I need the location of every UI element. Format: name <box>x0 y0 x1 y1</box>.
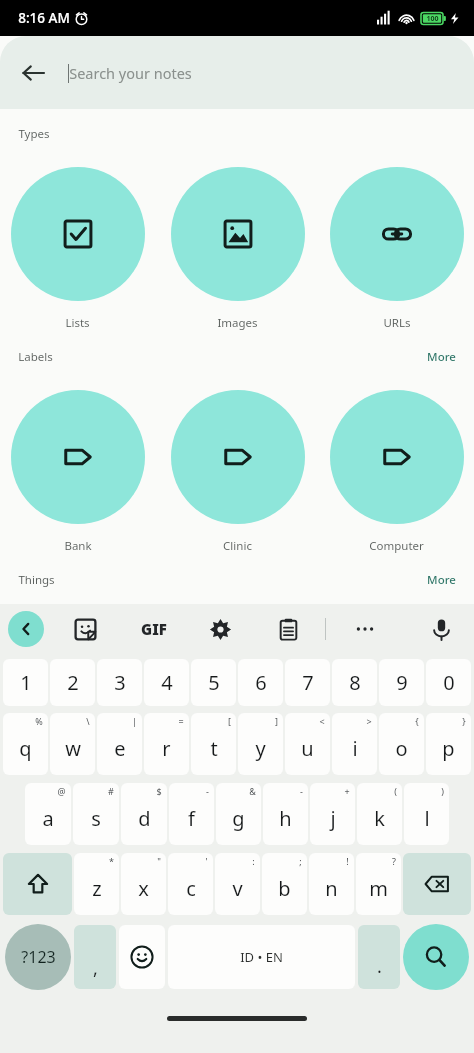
button[interactable]: 4 <box>144 659 189 706</box>
button[interactable]: 6 <box>238 659 283 706</box>
button[interactable]: Back <box>10 50 56 96</box>
button[interactable]: URLs <box>329 167 464 331</box>
button[interactable]: ID • EN <box>168 925 355 989</box>
button[interactable]: . <box>358 925 400 989</box>
staticText: f <box>188 805 195 832</box>
button[interactable]: $ <box>121 783 167 845</box>
button[interactable]: Settings <box>201 610 239 648</box>
button[interactable]: [ <box>191 713 236 775</box>
button[interactable]: > <box>332 713 377 775</box>
button[interactable]: + <box>310 783 355 845</box>
staticText: w <box>65 735 81 762</box>
staticText: - <box>300 785 303 797</box>
staticText: > <box>366 715 372 727</box>
button[interactable]: ] <box>238 713 283 775</box>
staticText: @ <box>57 785 66 797</box>
staticText: 3 <box>114 669 126 696</box>
staticText: u <box>301 735 314 762</box>
button[interactable]: Computer <box>329 390 464 554</box>
staticText: x <box>138 875 149 902</box>
button[interactable]: Stickers <box>66 610 104 648</box>
staticText: More <box>427 349 456 365</box>
button[interactable]: \ <box>50 713 95 775</box>
button[interactable]: ; <box>262 853 307 915</box>
staticText: ' <box>205 855 208 867</box>
button[interactable]: ! <box>309 853 354 915</box>
staticText: c <box>186 875 196 902</box>
button[interactable]: Clinic <box>170 390 305 554</box>
button[interactable]: 2 <box>50 659 95 706</box>
button[interactable]: Lists <box>10 167 145 331</box>
staticText: 100 <box>426 14 439 24</box>
staticText: 4 <box>161 669 173 696</box>
staticText: 9 <box>396 669 408 696</box>
staticText: | <box>132 715 137 727</box>
button[interactable]: GIF <box>134 609 174 649</box>
staticText: o <box>395 735 408 762</box>
button[interactable]: , <box>74 925 116 989</box>
button[interactable]: More <box>423 570 460 590</box>
button[interactable]: Search your notes <box>68 36 474 109</box>
staticText: [ <box>228 715 231 727</box>
button[interactable]: " <box>121 853 166 915</box>
button[interactable]: : <box>215 853 260 915</box>
button[interactable]: ?123 <box>5 924 71 990</box>
staticText: < <box>319 715 325 727</box>
button[interactable]: - <box>169 783 214 845</box>
staticText: GIF <box>141 619 167 639</box>
button[interactable]: Backspace <box>403 853 471 915</box>
staticText: = <box>178 715 184 727</box>
button[interactable]: More options <box>346 610 384 648</box>
button[interactable]: | <box>97 713 142 775</box>
button[interactable]: ? <box>356 853 401 915</box>
staticText: Bank <box>64 538 92 554</box>
button[interactable]: 9 <box>379 659 424 706</box>
staticText: ? <box>392 855 396 867</box>
staticText: ID • EN <box>240 948 283 966</box>
staticText: 1 <box>20 669 32 696</box>
button[interactable]: ' <box>168 853 213 915</box>
button[interactable]: 0 <box>426 659 471 706</box>
button[interactable]: Bank <box>10 390 145 554</box>
button[interactable]: * <box>74 853 119 915</box>
button[interactable]: = <box>144 713 189 775</box>
button[interactable]: % <box>3 713 48 775</box>
button[interactable]: # <box>73 783 119 845</box>
button[interactable]: < <box>285 713 330 775</box>
staticText: l <box>424 805 430 832</box>
staticText: ( <box>394 785 397 797</box>
button[interactable]: Back <box>8 611 44 647</box>
button[interactable]: ( <box>357 783 402 845</box>
button[interactable]: 3 <box>97 659 142 706</box>
button[interactable]: 1 <box>3 659 48 706</box>
staticText: p <box>442 735 455 762</box>
button[interactable]: @ <box>25 783 71 845</box>
staticText: y <box>255 735 266 762</box>
button[interactable]: Emoji <box>119 925 165 989</box>
button[interactable]: & <box>216 783 261 845</box>
button[interactable]: 7 <box>285 659 330 706</box>
button[interactable]: { <box>379 713 424 775</box>
button[interactable]: 5 <box>191 659 236 706</box>
staticText: Computer <box>369 538 424 554</box>
button[interactable]: Shift <box>3 853 72 915</box>
button[interactable]: Images <box>170 167 305 331</box>
staticText: 7 <box>302 669 314 696</box>
staticText: Images <box>217 315 258 331</box>
staticText: b <box>278 875 291 902</box>
staticText: Clinic <box>223 538 252 554</box>
staticText: } <box>462 715 466 727</box>
button[interactable]: Search <box>403 924 469 990</box>
staticText: 5 <box>208 669 220 696</box>
button[interactable]: Clipboard <box>269 610 307 648</box>
button[interactable]: Voice input <box>422 610 460 648</box>
button[interactable]: } <box>426 713 471 775</box>
staticText: e <box>114 735 126 762</box>
button[interactable]: ) <box>404 783 449 845</box>
staticText: " <box>157 855 161 867</box>
staticText: 2 <box>67 669 79 696</box>
button[interactable]: 8 <box>332 659 377 706</box>
button[interactable]: - <box>263 783 308 845</box>
button[interactable]: More <box>423 347 460 367</box>
staticText: d <box>138 805 151 832</box>
